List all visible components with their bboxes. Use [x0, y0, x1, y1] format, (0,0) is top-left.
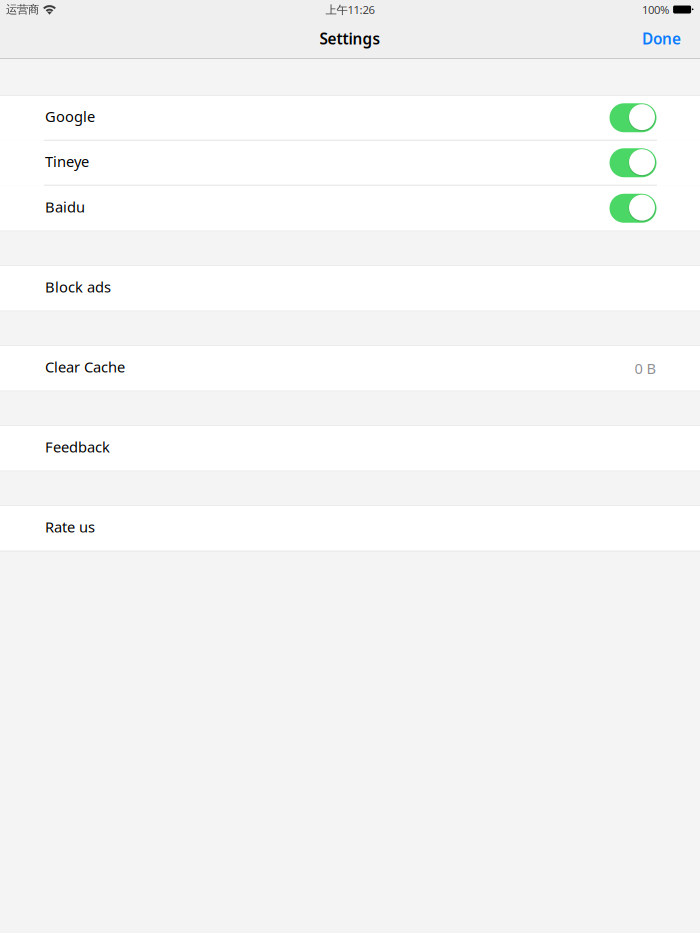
- staticText: Baidu: [45, 197, 85, 217]
- staticText: Clear Cache: [45, 357, 125, 377]
- button[interactable]: Feedback: [0, 426, 700, 471]
- staticText: Block ads: [45, 277, 111, 297]
- button[interactable]: Clear Cache: [0, 346, 700, 391]
- staticText: 100%: [642, 2, 669, 17]
- staticText: 上午11:26: [325, 2, 374, 17]
- staticText: Rate us: [45, 517, 95, 537]
- button[interactable]: Rate us: [0, 506, 700, 551]
- staticText: Google: [45, 106, 95, 126]
- staticText: 0 B: [634, 358, 656, 378]
- staticText: Feedback: [45, 437, 110, 457]
- staticText: Done: [642, 28, 681, 49]
- button[interactable]: Baidu: [0, 186, 700, 231]
- button[interactable]: Done: [633, 19, 690, 58]
- staticText: 运营商: [6, 2, 39, 17]
- button[interactable]: Google: [0, 96, 700, 141]
- button[interactable]: Tineye: [0, 141, 700, 186]
- button[interactable]: Block ads: [0, 266, 700, 311]
- staticText: Tineye: [45, 151, 89, 171]
- staticText: Settings: [319, 28, 380, 49]
